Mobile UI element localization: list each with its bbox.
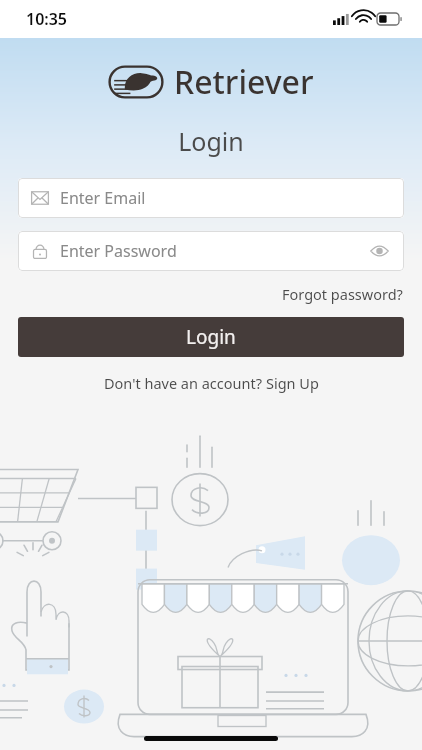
staticText: 10:35 <box>26 8 68 30</box>
staticText: Enter Password <box>60 240 367 262</box>
button[interactable]: Enter Password <box>18 231 404 271</box>
staticText: Login <box>186 324 236 350</box>
staticText: Forgot password? <box>282 284 403 304</box>
staticText: Enter Email <box>60 187 391 209</box>
staticText: Login <box>0 124 422 158</box>
button[interactable]: Sign Up <box>266 373 319 393</box>
staticText: Retriever <box>174 60 314 104</box>
staticText: Don't have an account? <box>104 373 266 393</box>
staticText: Sign Up <box>266 373 319 393</box>
button[interactable]: Enter Email <box>18 178 404 218</box>
button[interactable]: Forgot password? <box>280 281 405 307</box>
button[interactable]: Show password <box>367 239 391 263</box>
button[interactable]: Login <box>18 317 404 357</box>
